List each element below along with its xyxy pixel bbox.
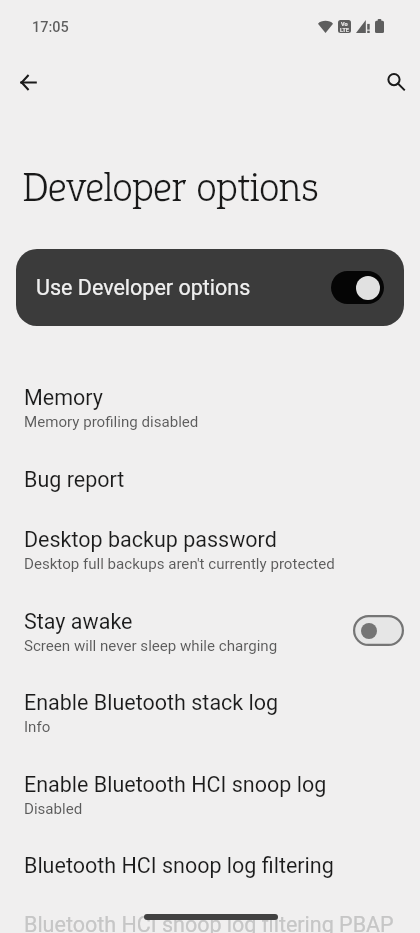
button[interactable]: Bug report (0, 449, 420, 510)
button[interactable]: Use Developer options (16, 249, 404, 326)
staticText: Desktop full backups aren't currently pr… (24, 555, 335, 573)
staticText: Disabled (24, 800, 83, 818)
staticText: Vo (341, 21, 348, 27)
button[interactable]: Back (6, 60, 50, 104)
staticText: Bluetooth HCI snoop log filtering (24, 853, 334, 878)
button[interactable]: Bluetooth HCI snoop log filtering PBAP (0, 894, 420, 933)
staticText: 17:05 (32, 19, 69, 36)
staticText: Screen will never sleep while charging (24, 637, 278, 655)
staticText: Info (24, 718, 51, 736)
staticText: Desktop backup password (24, 527, 277, 552)
staticText: Stay awake (24, 609, 133, 634)
button[interactable]: Memory (0, 367, 420, 449)
staticText: Developer options (22, 160, 320, 214)
staticText: Memory (24, 385, 103, 410)
button[interactable]: Bluetooth HCI snoop log filtering (0, 835, 420, 896)
staticText: Use Developer options (36, 275, 251, 300)
button[interactable]: Enable Bluetooth stack log (0, 672, 420, 754)
staticText: Enable Bluetooth HCI snoop log (24, 772, 327, 797)
button[interactable]: Desktop backup password (0, 509, 420, 591)
button[interactable]: Search (373, 59, 417, 103)
staticText: Bluetooth HCI snoop log filtering PBAP (24, 912, 394, 933)
staticText: Enable Bluetooth stack log (24, 690, 279, 715)
staticText: LTE (340, 27, 349, 33)
button[interactable]: Stay awake (0, 591, 420, 673)
button[interactable]: Enable Bluetooth HCI snoop log (0, 754, 420, 836)
staticText: Memory profiling disabled (24, 413, 199, 431)
staticText: Bug report (24, 467, 125, 492)
